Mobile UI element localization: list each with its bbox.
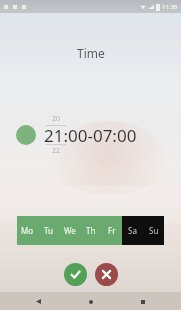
staticText: Th (86, 225, 96, 236)
staticText: We (64, 225, 76, 236)
staticText: 20 (52, 114, 61, 124)
staticText: 22 (52, 146, 61, 156)
staticText: Su (149, 225, 159, 236)
button[interactable]: Su (143, 216, 164, 245)
button[interactable]: Fr (101, 216, 122, 245)
staticText: Sa (128, 225, 137, 236)
button[interactable]: Home (84, 295, 97, 308)
staticText: 11:36 (162, 3, 178, 11)
button[interactable]: Back (32, 295, 45, 308)
button[interactable]: Sa (122, 216, 143, 245)
button[interactable]: Toggle schedule (16, 125, 36, 145)
button[interactable]: Confirm (64, 263, 87, 286)
button[interactable]: Cancel (95, 263, 118, 286)
button[interactable]: We (59, 216, 80, 245)
staticText: Time (77, 45, 105, 61)
button[interactable]: Recents (136, 295, 149, 308)
button[interactable]: Th (80, 216, 101, 245)
button[interactable]: Mo (17, 216, 38, 245)
button[interactable]: Toggle schedule (0, 113, 181, 157)
staticText: Tu (44, 225, 53, 236)
staticText: Fr (108, 225, 116, 236)
button[interactable]: Tu (38, 216, 59, 245)
staticText: 21:00-07:00 (44, 124, 137, 147)
staticText: Mo (21, 225, 34, 236)
